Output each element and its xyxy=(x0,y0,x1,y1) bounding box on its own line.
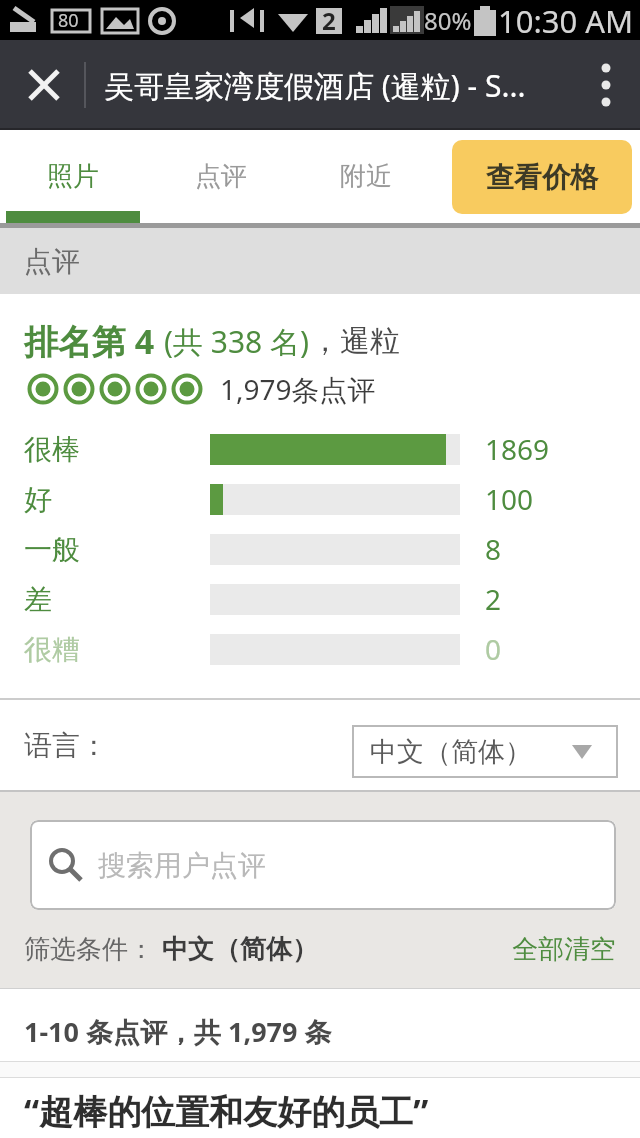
staticText: 搜索用户点评 xyxy=(98,848,266,883)
staticText: 10:30 AM xyxy=(498,0,634,40)
staticText: (共 338 名) xyxy=(164,321,310,362)
button[interactable] xyxy=(582,61,630,109)
staticText: 1869 xyxy=(485,430,550,468)
button[interactable]: 照片 xyxy=(0,130,146,223)
staticText: ，暹粒 xyxy=(310,322,400,360)
staticText: 点评 xyxy=(24,244,80,279)
staticText: 好 xyxy=(24,482,52,517)
staticText: 100 xyxy=(485,480,534,518)
staticText: 语言： xyxy=(24,728,108,763)
staticText: 中文（简体） xyxy=(162,933,318,966)
staticText: 排名第 4 xyxy=(24,318,164,364)
staticText: 照片 xyxy=(47,160,99,193)
staticText: 2 xyxy=(485,580,502,618)
staticText: 很糟 xyxy=(24,632,80,667)
button[interactable]: 附近 xyxy=(296,130,436,223)
staticText: 2 xyxy=(322,4,336,37)
button[interactable]: 查看价格 xyxy=(452,140,632,214)
staticText: “超棒的位置和友好的员工” xyxy=(24,1088,429,1134)
staticText: 中文（简体） xyxy=(370,735,532,769)
staticText: 一般 xyxy=(24,532,80,567)
button[interactable]: 全部清空 xyxy=(512,933,616,966)
staticText: 附近 xyxy=(340,160,392,193)
button[interactable] xyxy=(14,55,74,115)
staticText: 筛选条件： xyxy=(24,933,154,966)
staticText: 8 xyxy=(485,530,502,568)
staticText: 差 xyxy=(24,582,52,617)
staticText: 点评 xyxy=(195,160,247,193)
staticText: 1,979条点评 xyxy=(220,370,376,408)
staticText: 80 xyxy=(58,8,79,33)
staticText: 1-10 条点评，共 1,979 条 xyxy=(24,1013,332,1050)
staticText: 很棒 xyxy=(24,432,80,467)
button[interactable]: 搜索用户点评 xyxy=(30,820,616,910)
staticText: 80% xyxy=(424,4,472,37)
staticText: 查看价格 xyxy=(486,160,598,195)
button[interactable]: 点评 xyxy=(148,130,294,223)
staticText: 0 xyxy=(485,630,502,668)
button[interactable]: 中文（简体） xyxy=(352,725,618,778)
staticText: 吴哥皇家湾度假酒店 (暹粒) - S... xyxy=(104,65,526,106)
